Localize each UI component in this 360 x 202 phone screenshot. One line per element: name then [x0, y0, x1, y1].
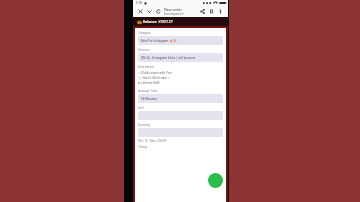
staticText: Charge	[138, 145, 148, 149]
button[interactable]: Reload	[154, 6, 163, 17]
button[interactable]: 54 Minutes	[138, 94, 223, 103]
staticText: Services	[138, 48, 150, 52]
button[interactable]: More options	[216, 6, 225, 17]
staticText: Category	[138, 31, 151, 35]
staticText: Best For Instagram 🔥💯	[141, 39, 177, 43]
staticText: 5:18	[136, 1, 142, 5]
button[interactable]: Expand	[145, 6, 154, 17]
staticText: Min: 10 - Max: 200000	[138, 139, 167, 143]
staticText: New order	[164, 7, 183, 12]
button[interactable]: Best For Instagram 🔥💯	[138, 36, 223, 45]
staticText: Average Time	[138, 89, 158, 93]
button[interactable]: Bookmark	[207, 6, 216, 17]
staticText: Link	[138, 106, 144, 110]
staticText: [ID=6] - Instagram Likes | old account	[141, 56, 196, 60]
staticText: Balance: ₹1921.17	[143, 19, 173, 24]
staticText: ⚡ Old Accounts with Post	[138, 71, 172, 75]
button[interactable]: Chat support	[208, 173, 223, 188]
button[interactable]: [ID=6] - Instagram Likes | old account	[138, 53, 223, 62]
button[interactable]: Share	[198, 6, 207, 17]
button[interactable]: Close	[136, 6, 145, 17]
staticText: fbsmmpanel.in	[164, 12, 184, 16]
staticText: Description	[138, 65, 155, 69]
button[interactable]: Menu	[136, 19, 142, 25]
staticText: Quantity	[138, 123, 151, 127]
staticText: ⏱ Start 0-60s Instant ⚡	[138, 76, 171, 80]
button[interactable]: New order	[164, 7, 198, 16]
staticText: ♻ Lifetime Refill	[138, 81, 160, 85]
staticText: 54 Minutes	[141, 97, 157, 101]
